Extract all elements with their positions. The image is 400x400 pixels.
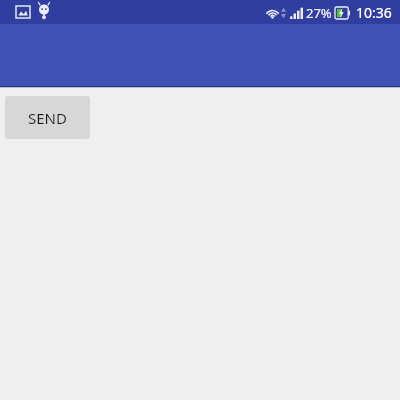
staticText: SEND <box>28 108 67 128</box>
button[interactable]: SEND <box>5 96 90 139</box>
staticText: 10:36 <box>356 3 392 22</box>
staticText: 27% <box>306 4 332 22</box>
